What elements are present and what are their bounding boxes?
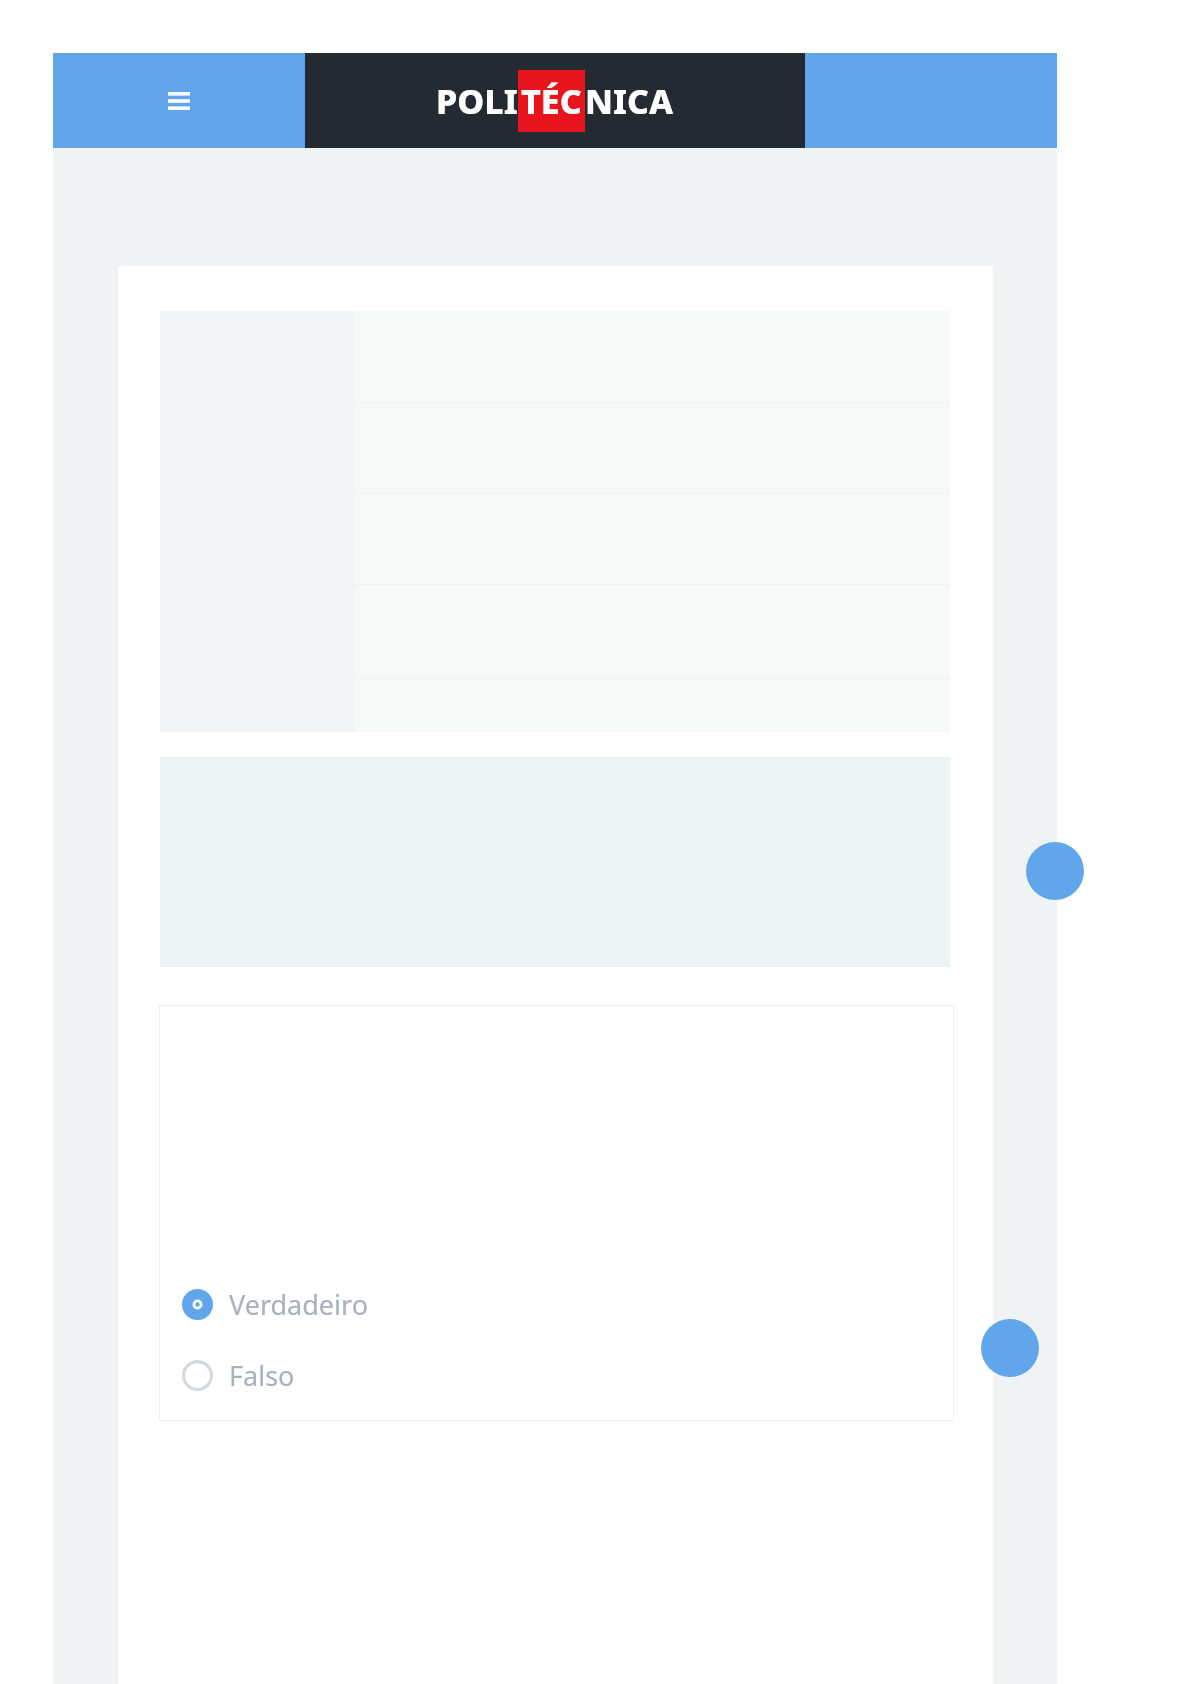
staticText: Verdadeiro [229,1286,368,1323]
button[interactable]: Verdadeiro [182,1282,382,1327]
button[interactable]: Previous [1026,842,1084,900]
staticText: POLI [436,78,518,124]
button[interactable]: POLI [305,53,805,148]
staticText: TÉC [521,78,582,124]
staticText: NICA [585,78,674,124]
button[interactable]: Next [981,1319,1039,1377]
staticText: Falso [229,1357,295,1394]
button[interactable]: Open navigation menu [53,53,305,148]
button[interactable]: Falso [182,1353,309,1398]
